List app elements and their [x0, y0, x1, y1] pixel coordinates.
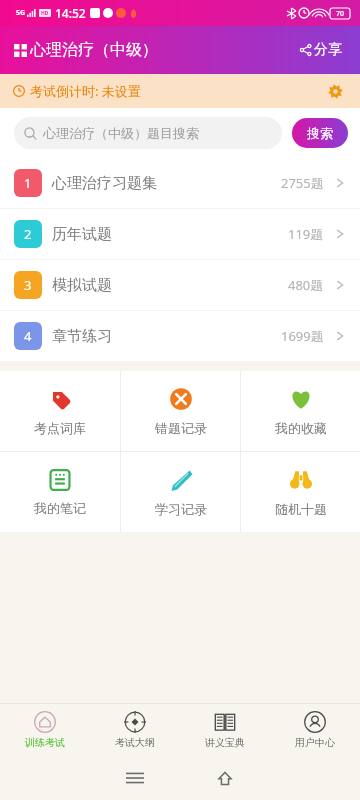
button[interactable]: 训练考试: [0, 704, 90, 756]
button[interactable]: 考试大纲: [90, 704, 180, 756]
button[interactable]: 4: [0, 311, 360, 361]
staticText: 14:52: [55, 5, 86, 21]
staticText: 1699题: [281, 327, 324, 345]
staticText: 5G: [16, 8, 26, 18]
staticText: 章节练习: [52, 327, 112, 346]
staticText: 学习记录: [155, 501, 207, 517]
staticText: 用户中心: [295, 736, 335, 749]
staticText: 搜索: [307, 125, 333, 141]
button[interactable]: 心理治疗（中级）题目搜索: [14, 117, 282, 149]
other: Menu: [14, 44, 27, 57]
staticText: 心理治疗（中级）题目搜索: [43, 125, 199, 141]
staticText: 考点词库: [34, 420, 86, 436]
staticText: 随机十题: [275, 501, 327, 517]
button[interactable]: 设置: [323, 79, 347, 103]
staticText: 考试倒计时: 未设置: [30, 82, 141, 100]
staticText: 错题记录: [155, 420, 207, 436]
staticText: 训练考试: [25, 736, 65, 749]
staticText: 4: [24, 327, 32, 345]
button[interactable]: 讲义宝典: [180, 704, 270, 756]
button[interactable]: 学习记录: [121, 452, 240, 532]
staticText: 考试大纲: [115, 736, 155, 749]
button[interactable]: 3: [0, 260, 360, 310]
staticText: 模拟试题: [52, 276, 112, 295]
staticText: 480题: [288, 276, 324, 294]
button[interactable]: 1: [0, 158, 360, 208]
staticText: HD: [41, 10, 49, 17]
staticText: 讲义宝典: [205, 736, 245, 749]
button[interactable]: Back: [180, 756, 270, 800]
button[interactable]: 分享: [296, 37, 346, 63]
staticText: 分享: [314, 41, 342, 59]
staticText: 3: [24, 276, 32, 294]
staticText: 历年试题: [52, 225, 112, 244]
staticText: 我的笔记: [34, 500, 86, 516]
staticText: 我的收藏: [275, 420, 327, 436]
button[interactable]: 我的收藏: [241, 371, 360, 451]
button[interactable]: 我的笔记: [0, 452, 120, 532]
button[interactable]: 搜索: [292, 118, 348, 148]
staticText: 心理治疗（中级）: [30, 40, 158, 60]
staticText: 119题: [288, 225, 324, 243]
button[interactable]: Recents: [90, 756, 180, 800]
staticText: 2: [24, 225, 32, 243]
button[interactable]: 考试倒计时: 未设置: [0, 74, 360, 108]
staticText: 1: [24, 174, 32, 192]
button[interactable]: 2: [0, 209, 360, 259]
staticText: 2755题: [281, 174, 324, 192]
button[interactable]: 用户中心: [270, 704, 360, 756]
staticText: 心理治疗习题集: [52, 174, 157, 193]
button[interactable]: 随机十题: [241, 452, 360, 532]
staticText: 70: [336, 9, 345, 19]
button[interactable]: 考点词库: [0, 371, 120, 451]
button[interactable]: 错题记录: [121, 371, 240, 451]
